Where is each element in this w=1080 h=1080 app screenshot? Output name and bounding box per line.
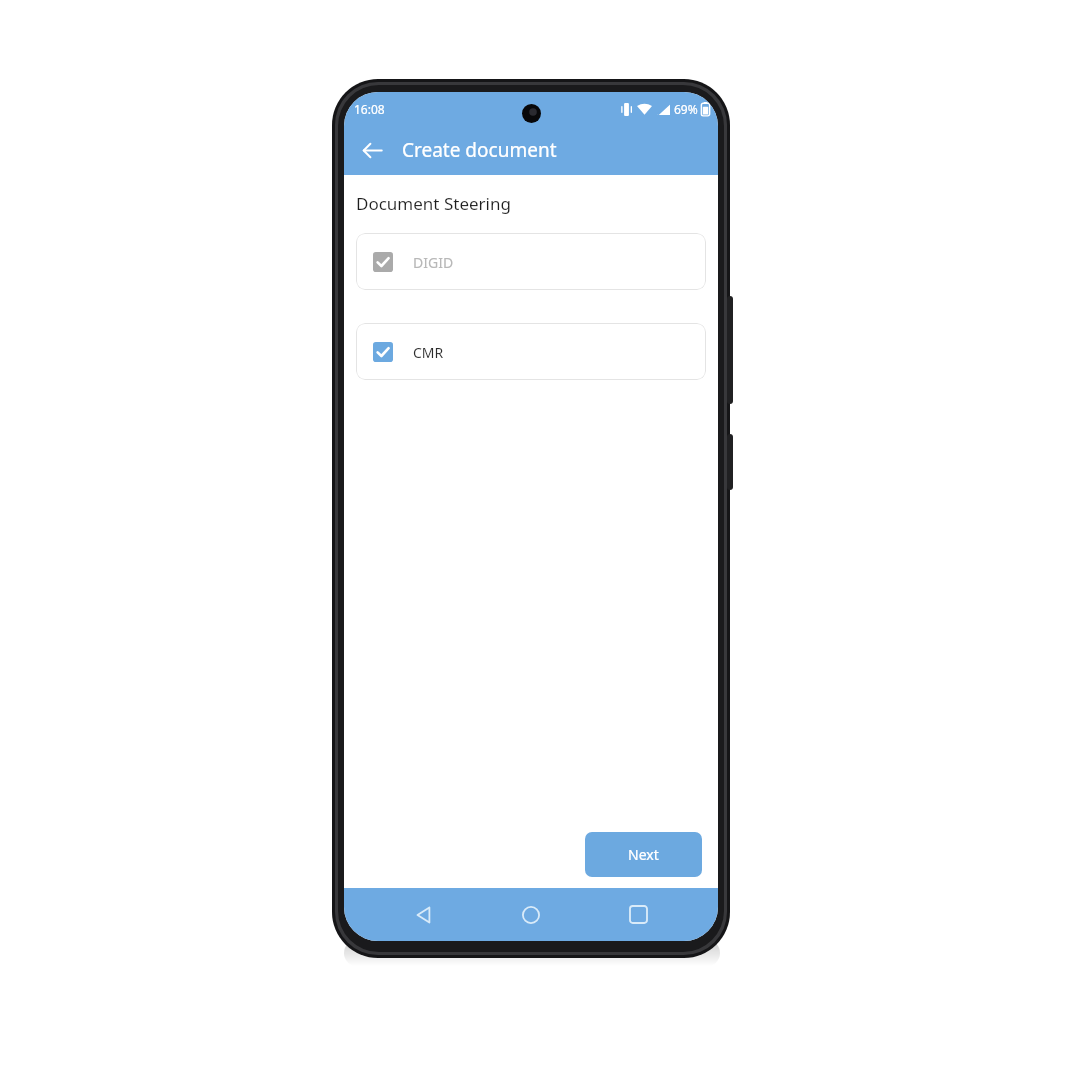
staticText: CMR [413,343,444,362]
staticText: DIGID [413,253,454,272]
staticText: 69% [674,101,698,117]
button[interactable]: Home [504,888,558,941]
button[interactable]: Next [585,832,702,877]
button[interactable]: Recent apps [611,888,665,941]
staticText: Next [628,845,659,864]
staticText: Document Steering [356,192,511,215]
button[interactable]: Back [352,130,392,170]
button[interactable]: DIGID [356,233,706,290]
staticText: 16:08 [354,101,385,117]
button[interactable]: CMR [356,323,706,380]
staticText: Create document [402,137,557,163]
button[interactable]: Back [397,888,451,941]
